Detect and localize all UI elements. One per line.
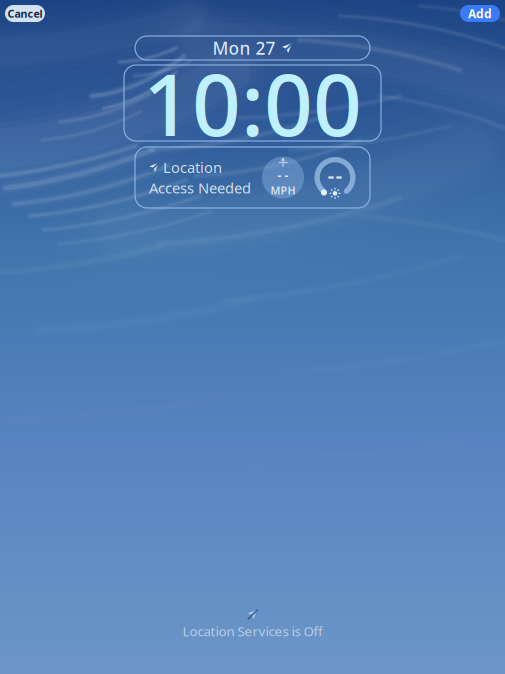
staticText: Cancel <box>7 6 42 21</box>
staticText: Location <box>163 157 222 177</box>
button[interactable]: Location <box>135 147 370 208</box>
staticText: - - <box>277 167 288 183</box>
staticText: MPH <box>270 183 295 198</box>
staticText: Add <box>468 5 492 21</box>
staticText: Access Needed <box>149 178 251 197</box>
button[interactable]: 10:00 <box>124 65 381 141</box>
button[interactable]: Add <box>460 5 500 22</box>
button[interactable]: Mon 27 <box>135 36 370 60</box>
staticText: Mon 27 <box>212 36 275 59</box>
staticText: Location Services is Off <box>182 622 322 640</box>
button[interactable]: Cancel <box>5 5 45 22</box>
staticText: 10:00 <box>143 46 362 160</box>
